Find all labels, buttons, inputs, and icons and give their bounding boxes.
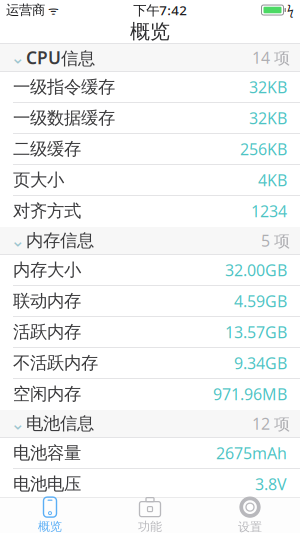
staticText: CPU信息 (26, 46, 95, 69)
button[interactable]: 对齐方式 (0, 196, 300, 227)
button[interactable]: 概览 (0, 498, 100, 532)
staticText: ⌄ (10, 48, 25, 67)
button[interactable]: ⌄ (0, 227, 300, 255)
staticText: 32.4°C (239, 504, 287, 526)
staticText: 12 项 (252, 413, 290, 434)
staticText: 971.96MB (213, 383, 287, 405)
button[interactable]: ⌄ (0, 410, 300, 438)
staticText: 联动内存 (13, 290, 81, 312)
staticText: 电池电压 (13, 473, 81, 495)
staticText: 运营商 (6, 2, 45, 18)
staticText: 32KB (249, 107, 287, 129)
staticText: 功能 (138, 519, 162, 533)
staticText: ⌄ (10, 231, 25, 250)
staticText: ϟ (287, 2, 294, 18)
staticText: 3.8V (255, 473, 287, 495)
staticText: 概览 (38, 519, 62, 533)
staticText: 页大小 (13, 169, 64, 191)
staticText: 4KB (258, 169, 287, 191)
button[interactable]: 内存大小 (0, 255, 300, 286)
staticText: 9.34GB (234, 352, 287, 374)
staticText: 一级指令缓存 (13, 76, 115, 98)
button[interactable]: 二级缓存 (0, 134, 300, 165)
staticText: 2675mAh (216, 442, 287, 464)
staticText: 内存大小 (13, 259, 81, 281)
staticText: ⌄ (10, 414, 25, 433)
button[interactable]: 一级数据缓存 (0, 103, 300, 134)
staticText: 5 项 (261, 230, 290, 251)
staticText: 对齐方式 (13, 200, 81, 222)
button[interactable]: 电池容量 (0, 438, 300, 469)
button[interactable]: 一级指令缓存 (0, 72, 300, 103)
staticText: 内存信息 (26, 230, 94, 251)
staticText: ᯤ (45, 2, 59, 18)
button[interactable]: 功能 (100, 498, 200, 532)
button[interactable]: 不活跃内存 (0, 348, 300, 379)
button[interactable]: 设置 (200, 498, 300, 532)
staticText: 13.57GB (225, 321, 287, 343)
staticText: 4.59GB (234, 290, 287, 312)
staticText: 电池容量 (13, 442, 81, 464)
staticText: 256KB (240, 138, 287, 160)
staticText: 概览 (130, 19, 170, 44)
button[interactable]: 活跃内存 (0, 317, 300, 348)
button[interactable]: 电池电压 (0, 469, 300, 500)
button[interactable]: 空闲内存 (0, 379, 300, 410)
staticText: 1234 (251, 200, 287, 222)
button[interactable]: 电池温度 (0, 500, 300, 531)
staticText: 设置 (238, 520, 262, 533)
staticText: 32KB (249, 76, 287, 98)
staticText: 32.00GB (225, 259, 287, 281)
staticText: 下午7:42 (133, 1, 187, 19)
staticText: 电池信息 (26, 413, 94, 434)
staticText: 电池温度 (13, 504, 81, 526)
staticText: 活跃内存 (13, 321, 81, 343)
button[interactable]: 联动内存 (0, 286, 300, 317)
button[interactable]: 页大小 (0, 165, 300, 196)
staticText: 二级缓存 (13, 138, 81, 160)
staticText: 14 项 (252, 47, 290, 68)
staticText: 不活跃内存 (13, 352, 98, 374)
staticText: 空闲内存 (13, 383, 81, 405)
button[interactable]: ⌄ (0, 44, 300, 72)
staticText: 一级数据缓存 (13, 107, 115, 129)
